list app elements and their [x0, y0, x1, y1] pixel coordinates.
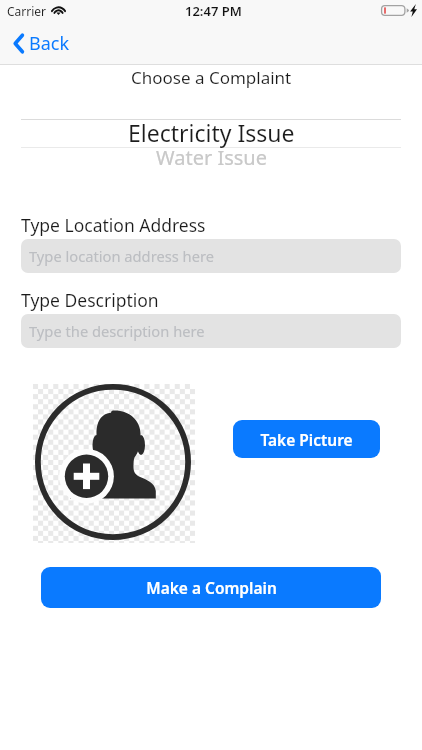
button[interactable]: Electricity Issue	[128, 117, 295, 148]
staticText: Take Picture	[260, 429, 353, 450]
button[interactable]: Take Picture	[233, 420, 380, 458]
staticText: Choose a Complaint	[131, 66, 292, 89]
button[interactable]: Type the description here	[21, 314, 401, 348]
staticText: Type Location Address	[21, 213, 206, 237]
staticText: Back	[29, 31, 70, 56]
staticText: Electricity Issue	[128, 117, 295, 148]
button[interactable]: Type location address here	[21, 239, 401, 273]
staticText: Make a Complain	[146, 577, 277, 598]
staticText: 12:47 PM	[185, 2, 242, 20]
button[interactable]: Add photo	[33, 384, 195, 543]
staticText: Type Description	[21, 288, 159, 312]
staticText: Water Issue	[156, 144, 267, 171]
button[interactable]: Back	[0, 24, 84, 63]
staticText: Type the description here	[29, 321, 205, 341]
button[interactable]: Make a Complain	[41, 567, 381, 608]
staticText: Type location address here	[29, 246, 215, 266]
button[interactable]: Water Issue	[156, 144, 267, 171]
staticText: Carrier	[7, 3, 47, 19]
